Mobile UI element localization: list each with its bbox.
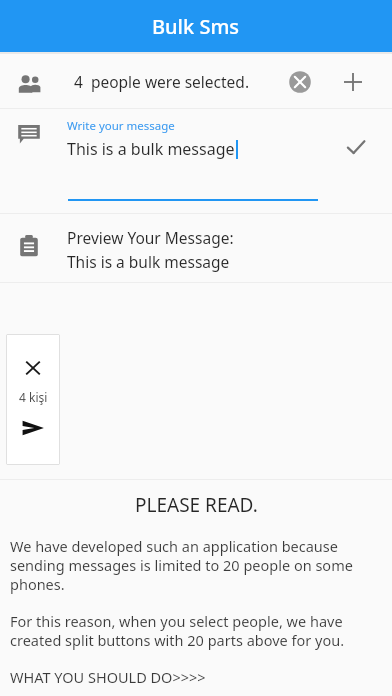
button[interactable]: Preview Your Message: bbox=[0, 214, 392, 282]
button[interactable]: Send to 4 people bbox=[6, 334, 60, 465]
staticText: Bulk Sms bbox=[152, 13, 240, 40]
button[interactable]: Clear selection bbox=[285, 67, 315, 97]
staticText: We have developed such an application be… bbox=[10, 536, 382, 594]
button[interactable]: Add people bbox=[338, 67, 368, 97]
staticText: Write your message bbox=[67, 118, 175, 134]
staticText: This is a bulk message bbox=[67, 251, 230, 272]
button[interactable]: Write your message bbox=[0, 109, 392, 213]
staticText: PLEASE READ. bbox=[135, 492, 258, 518]
staticText: WHAT YOU SHOULD DO>>>> bbox=[10, 667, 206, 687]
staticText: 4 kişi bbox=[19, 389, 48, 405]
button[interactable]: Confirm message bbox=[341, 132, 371, 162]
staticText: 4 people were selected. bbox=[74, 71, 250, 92]
staticText: For this reason, when you select people,… bbox=[10, 611, 382, 650]
staticText: Preview Your Message: bbox=[67, 227, 234, 248]
button[interactable]: 4 people were selected. bbox=[0, 54, 392, 108]
staticText: This is a bulk message bbox=[67, 138, 235, 160]
